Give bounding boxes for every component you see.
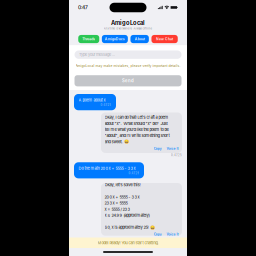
button[interactable]: Send: [74, 75, 181, 86]
staticText: Do the math 200x + 5555 - 33x: [79, 166, 136, 171]
button[interactable]: Voice It: [166, 232, 178, 236]
staticText: AmigoLocal: [111, 19, 145, 26]
staticText: A poem about x: [79, 98, 106, 102]
staticText: Okay, I can do that! Let's craft a poem: [105, 115, 169, 120]
staticText: 233x = 5555: [105, 201, 128, 205]
staticText: "about", and I'll write something short: [105, 133, 170, 138]
staticText: About: [135, 37, 145, 41]
staticText: about "x". What should "x" be? Just: [105, 121, 168, 126]
staticText: Voice It: [166, 232, 178, 236]
staticText: 200x + 5555 - 33x: [105, 195, 140, 199]
staticText: 0:47: [78, 4, 88, 10]
staticText: x = 5555 / 233: [105, 207, 131, 212]
staticText: x ≈ 24.99 (approximately): [105, 213, 150, 218]
staticText: Type your message ...: [79, 52, 115, 57]
staticText: New Chat: [156, 37, 173, 41]
button[interactable]: About: [130, 35, 149, 43]
staticText: AmigoLocal may make mistakes, please ver…: [75, 64, 180, 68]
staticText: Send: [122, 78, 134, 83]
button[interactable]: Type your message ...: [74, 50, 181, 59]
button[interactable]: AmigoDocs: [102, 35, 128, 43]
staticText: Okay, let's solve this!: [105, 182, 141, 187]
staticText: So, x is approximately 25! 😄: [105, 225, 155, 230]
staticText: and sweet. 😄: [105, 139, 129, 144]
staticText: Model Ready! You can start chatting.: [97, 240, 158, 245]
staticText: 0:47:26: [128, 172, 139, 175]
button[interactable]: Voice It: [166, 146, 178, 150]
staticText: 0:47:25: [171, 154, 182, 157]
staticText: Voice It: [166, 146, 178, 150]
button[interactable]: Copy: [154, 146, 162, 150]
staticText: 0:47:25: [100, 103, 111, 107]
staticText: AmigoDocs: [105, 37, 125, 41]
staticText: Anytime Everywhere Always Offline: [103, 27, 152, 30]
staticText: Copy: [154, 232, 162, 236]
staticText: Copy: [154, 146, 162, 150]
button[interactable]: New Chat: [151, 35, 178, 43]
staticText: Threads: [82, 37, 95, 41]
staticText: tell me what you'd like the poem to be: [105, 127, 169, 132]
button[interactable]: Threads: [78, 35, 99, 43]
button[interactable]: Copy: [154, 232, 162, 236]
